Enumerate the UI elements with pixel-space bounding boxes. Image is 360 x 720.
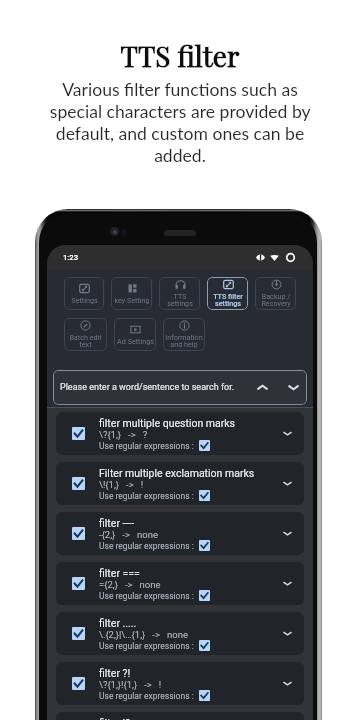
button[interactable]: Expand: [283, 429, 292, 438]
staticText: TTS filter: [0, 37, 360, 74]
button[interactable]: Expand: [283, 479, 292, 488]
staticText: \.{2,}|\…{1,} -> none: [99, 629, 188, 640]
button[interactable]: Please enter a word/sentence to search f…: [53, 370, 307, 405]
staticText: \?{1,}!{1,} -> !: [99, 679, 162, 690]
staticText: Use regular expressions :: [99, 441, 194, 451]
button[interactable]: Enabled: [72, 677, 85, 690]
button[interactable]: Enabled: [56, 412, 304, 455]
button[interactable]: Expand: [283, 529, 292, 538]
button[interactable]: Expand: [283, 679, 292, 688]
staticText: -{2,} -> none: [99, 529, 158, 540]
staticText: filter !?: [99, 717, 131, 720]
staticText: filter multiple question marks: [99, 417, 236, 429]
staticText: Use regular expressions :: [99, 491, 194, 501]
staticText: filter .....: [99, 617, 137, 629]
button[interactable]: Enabled: [56, 512, 304, 555]
button[interactable]: Enabled: [72, 577, 85, 590]
staticText: Use regular expressions :: [99, 641, 194, 651]
staticText: Use regular expressions :: [99, 691, 194, 701]
staticText: TTS filter settings: [213, 292, 243, 308]
button[interactable]: Enabled: [72, 427, 85, 440]
button[interactable]: key Setting: [111, 277, 152, 310]
staticText: ={2,} -> none: [99, 579, 161, 590]
staticText: Use regular expressions :: [99, 541, 194, 551]
button[interactable]: Backup / Recovery: [255, 277, 296, 310]
staticText: Settings: [71, 296, 98, 304]
button[interactable]: Expand: [283, 579, 292, 588]
staticText: filter ?!: [99, 667, 131, 679]
button[interactable]: Enabled: [56, 462, 304, 505]
staticText: Ad Settings: [117, 337, 154, 345]
staticText: Batch edit text: [69, 333, 102, 349]
staticText: \?{1,} -> ?: [99, 429, 148, 440]
button[interactable]: Enabled: [72, 627, 85, 640]
staticText: Use regular expressions :: [99, 591, 194, 601]
button[interactable]: Batch edit text: [64, 318, 107, 351]
button[interactable]: Enabled: [72, 477, 85, 490]
staticText: Filter multiple exclamation marks: [99, 467, 255, 479]
staticText: \!{1,} -> !: [99, 479, 144, 490]
button[interactable]: Ad Settings: [114, 318, 156, 351]
staticText: filter ----: [99, 517, 135, 529]
button[interactable]: Settings: [64, 277, 104, 310]
button[interactable]: Enabled: [56, 662, 304, 705]
button[interactable]: TTS settings: [159, 277, 200, 310]
button[interactable]: Information and help: [163, 318, 205, 351]
staticText: Information and help: [165, 333, 203, 349]
button[interactable]: Enabled: [199, 640, 210, 651]
button[interactable]: Enabled: [199, 540, 210, 551]
button[interactable]: Enabled: [72, 527, 85, 540]
button[interactable]: Enabled: [199, 490, 210, 501]
staticText: Please enter a word/sentence to search f…: [60, 382, 235, 393]
staticText: TTS settings: [167, 292, 193, 308]
button[interactable]: Enabled: [56, 612, 304, 655]
staticText: 1:23: [63, 253, 78, 262]
button[interactable]: Enabled: [56, 712, 304, 720]
button[interactable]: Enabled: [199, 690, 210, 701]
staticText: Various filter functions such as special…: [44, 79, 316, 166]
button[interactable]: Enabled: [56, 562, 304, 605]
staticText: key Setting: [114, 296, 150, 304]
staticText: Backup / Recovery: [261, 292, 291, 308]
button[interactable]: Enabled: [199, 440, 210, 451]
button[interactable]: Enabled: [199, 590, 210, 601]
staticText: filter ===: [99, 567, 140, 579]
button[interactable]: Expand: [288, 382, 299, 393]
button[interactable]: TTS filter settings: [207, 277, 248, 310]
button[interactable]: Expand: [283, 629, 292, 638]
button[interactable]: Previous result: [257, 382, 268, 393]
